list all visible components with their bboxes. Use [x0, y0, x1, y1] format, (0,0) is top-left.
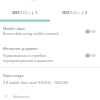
button[interactable]: SIMスロット2 [50, 0, 100, 21]
staticText: SIMスロット1 [12, 10, 38, 16]
button[interactable] [0, 23, 100, 38]
button[interactable] [0, 44, 100, 65]
staticText: Подключаться к службам [3, 53, 47, 58]
button[interactable] [0, 90, 100, 100]
button[interactable] [0, 71, 100, 86]
button[interactable]: SIMスロット1 [0, 0, 50, 21]
staticText: передачи данных в роуминге [3, 58, 54, 63]
staticText: 0 B mobile data used 9月30日～10月29日 [3, 80, 69, 85]
staticText: Интернет-роуминг [3, 46, 39, 51]
other: Expand advanced settings [4, 94, 8, 98]
button[interactable]: Mobile data toggle [85, 28, 96, 35]
staticText: Mobile data [3, 26, 25, 31]
staticText: Access data using mobile network [3, 31, 59, 36]
staticText: Advanced [13, 94, 30, 99]
button[interactable]: Data roaming toggle [85, 52, 96, 59]
staticText: Data usage [3, 73, 24, 78]
staticText: SIMスロット2 [62, 10, 88, 16]
